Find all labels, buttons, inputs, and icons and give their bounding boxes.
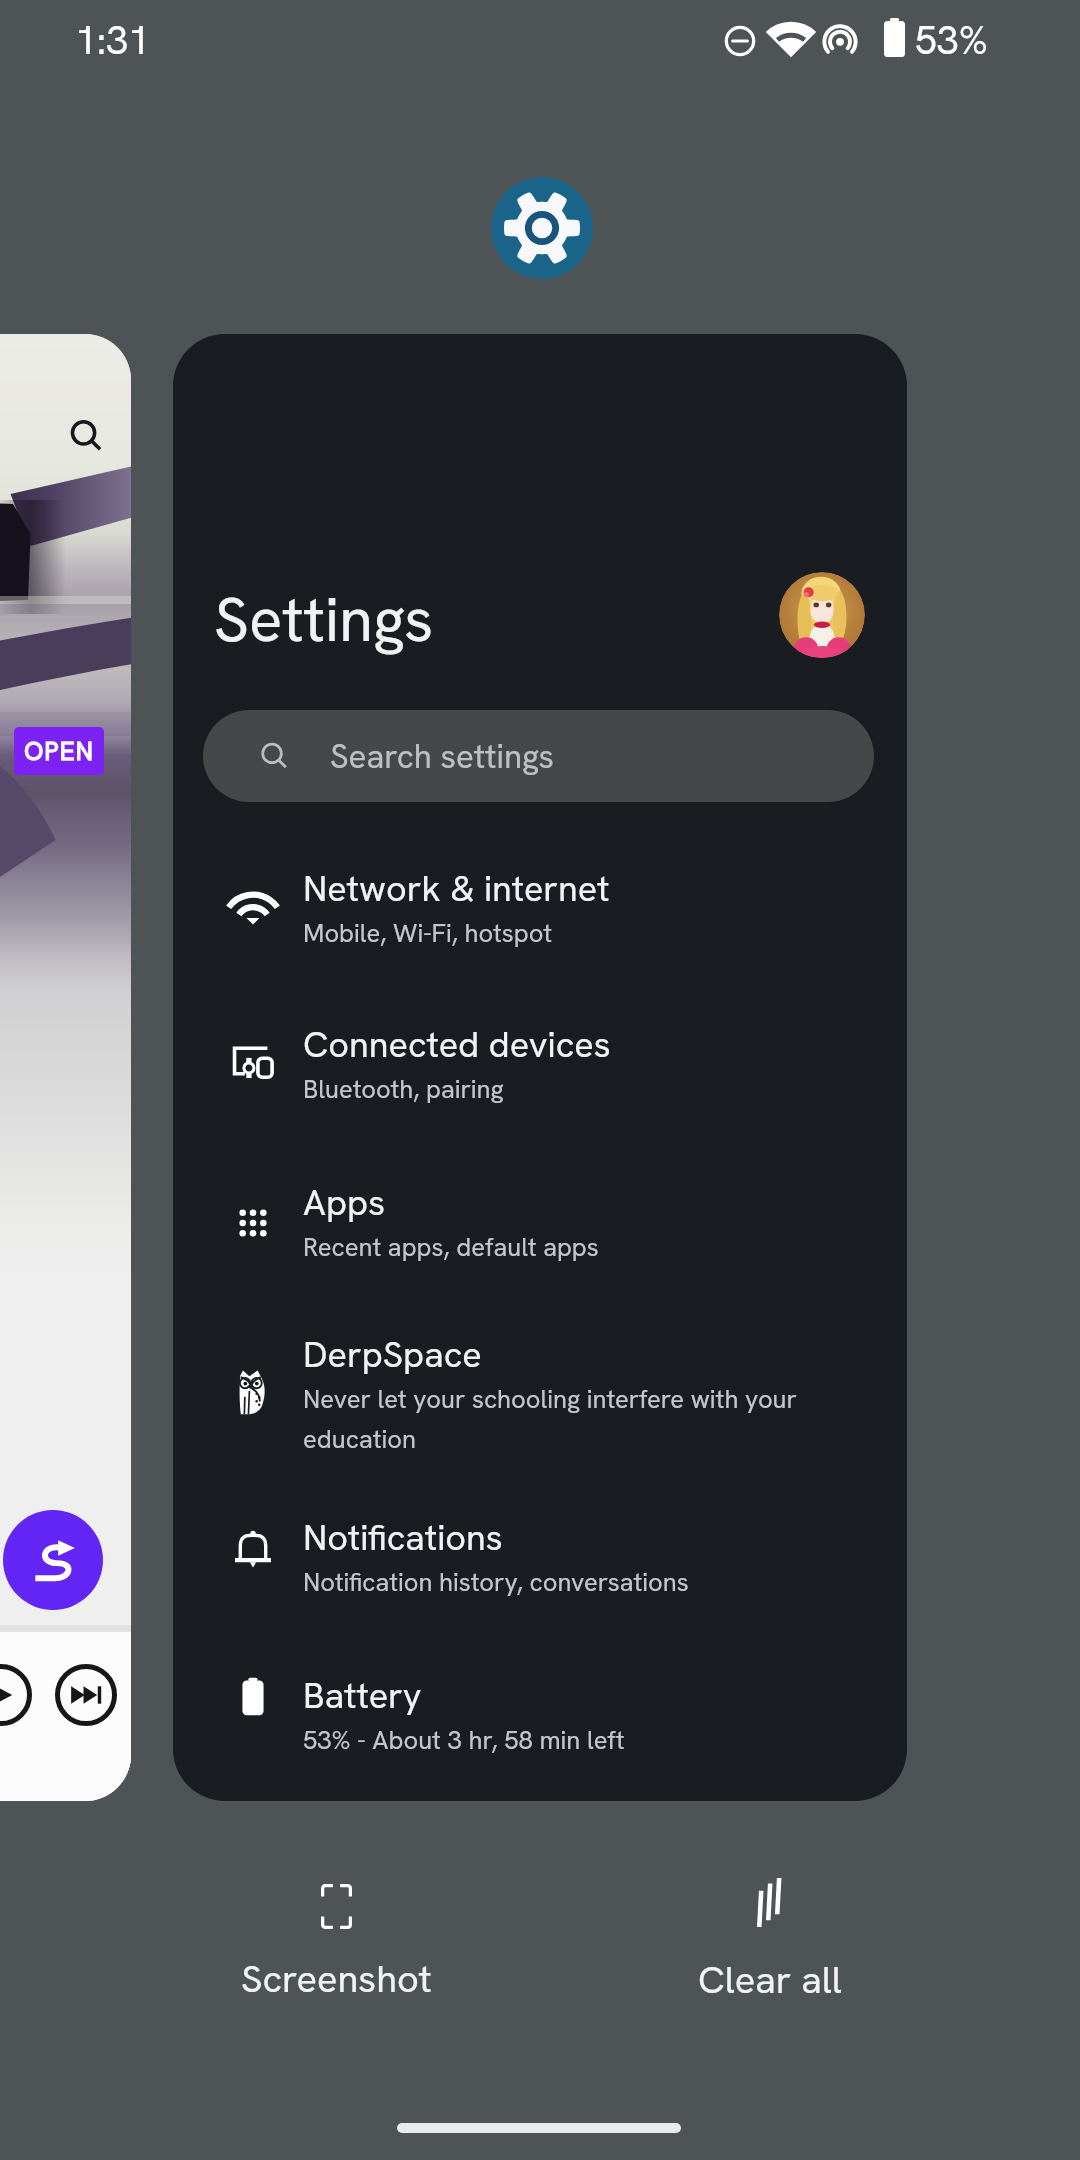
button[interactable]: Shuffle [3,1510,103,1610]
staticText: Notification history, conversations [303,1565,833,1598]
staticText: 1:31 [75,15,150,66]
staticText: Battery [303,1672,422,1719]
staticText: Connected devices [303,1021,611,1068]
button[interactable]: OPEN [14,727,104,775]
button[interactable]: Network & internet [173,838,907,978]
staticText: DerpSpace [303,1331,482,1378]
staticText: Apps [303,1179,386,1226]
staticText: Mobile, Wi-Fi, hotspot [303,916,763,949]
other: Hotspot [823,22,857,58]
staticText: Notifications [303,1514,503,1561]
button[interactable]: Clear all [670,1878,870,2005]
button[interactable]: Apps [173,1152,907,1292]
button[interactable]: Search [0,334,131,1801]
other: Wi-Fi [770,22,812,58]
staticText: Settings [214,579,434,660]
button[interactable]: Notifications [173,1487,907,1627]
staticText: Network & internet [303,865,610,912]
staticText: Clear all [698,1955,842,2005]
button[interactable]: Settings app icon [491,177,593,279]
staticText: OPEN [24,734,94,768]
staticText: Screenshot [241,1954,432,2004]
button[interactable]: Search settings [203,710,874,802]
staticText: Never let your schooling interfere with … [303,1382,803,1456]
button[interactable]: Account avatar [779,572,865,658]
other: Battery [884,18,905,57]
staticText: Search settings [330,735,555,778]
button[interactable]: Play [0,1664,32,1726]
button[interactable]: Connected devices [173,994,907,1134]
button[interactable]: Next track [55,1664,117,1726]
button[interactable]: Battery [173,1645,907,1785]
staticText: 53% - About 3 hr, 58 min left [303,1723,803,1756]
button[interactable]: Screenshot [236,1884,436,2004]
staticText: Recent apps, default apps [303,1230,763,1263]
other: Do not disturb [723,24,757,58]
button[interactable]: Settings [173,334,907,1801]
button[interactable]: DerpSpace [173,1304,907,1479]
staticText: Bluetooth, pairing [303,1072,763,1105]
button[interactable]: Search [60,410,113,463]
staticText: 53% [915,15,988,66]
